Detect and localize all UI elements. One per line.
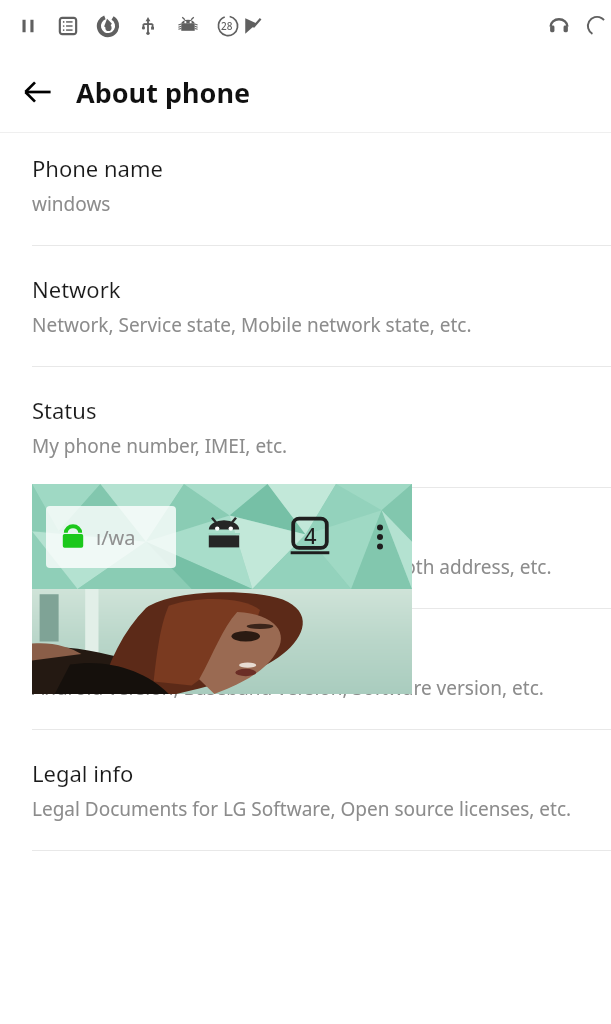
- button[interactable]: Hardware info: [0, 516, 611, 608]
- staticText: Network, Service state, Mobile network s…: [32, 312, 472, 338]
- button[interactable]: [32, 589, 412, 694]
- staticText: windows: [32, 191, 111, 217]
- button[interactable]: Tabs: 4: [286, 513, 334, 561]
- button[interactable]: More options: [362, 515, 398, 559]
- button[interactable]: Android: [202, 515, 246, 559]
- staticText: 4: [304, 520, 317, 550]
- staticText: About phone: [76, 74, 251, 111]
- button[interactable]: Phone name: [0, 153, 611, 245]
- staticText: Android version, Baseband version, Softw…: [32, 675, 544, 701]
- staticText: Model number, Wi-Fi MAC address, Bluetoo…: [32, 554, 552, 580]
- staticText: Status: [32, 395, 97, 425]
- staticText: Hardware info: [32, 516, 180, 546]
- button[interactable]: Legal info: [0, 758, 611, 850]
- button[interactable]: Status: [0, 395, 611, 487]
- staticText: Legal info: [32, 758, 134, 788]
- staticText: Network: [32, 274, 121, 304]
- staticText: Legal Documents for LG Software, Open so…: [32, 796, 572, 822]
- staticText: ı/wa: [96, 524, 136, 551]
- button[interactable]: Software info: [0, 637, 611, 729]
- staticText: My phone number, IMEI, etc.: [32, 433, 288, 459]
- staticText: Phone name: [32, 153, 163, 183]
- staticText: Software info: [32, 637, 170, 667]
- staticText: 28: [221, 19, 233, 33]
- button[interactable]: Back: [14, 68, 62, 116]
- button[interactable]: Network: [0, 274, 611, 366]
- button[interactable]: ı/wa: [46, 506, 176, 568]
